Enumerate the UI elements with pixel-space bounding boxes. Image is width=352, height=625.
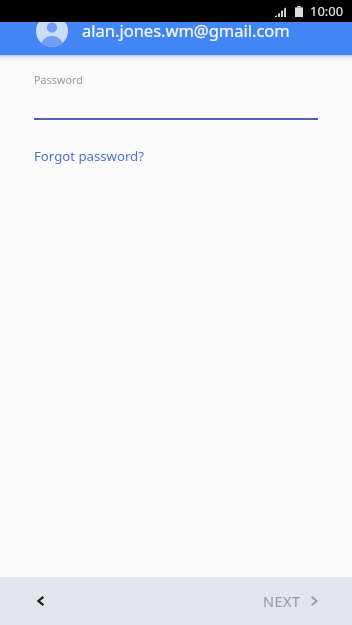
staticText: 10:00 bbox=[310, 2, 344, 20]
button[interactable]: Back bbox=[19, 579, 63, 623]
staticText: Password bbox=[34, 72, 83, 87]
button[interactable]: NEXT bbox=[263, 591, 318, 611]
staticText: Forgot password? bbox=[34, 147, 144, 165]
button[interactable]: Account bbox=[36, 15, 68, 47]
staticText: NEXT bbox=[263, 591, 301, 611]
staticText: alan.jones.wm@gmail.com bbox=[82, 19, 290, 41]
button[interactable]: Forgot password? bbox=[34, 147, 144, 165]
